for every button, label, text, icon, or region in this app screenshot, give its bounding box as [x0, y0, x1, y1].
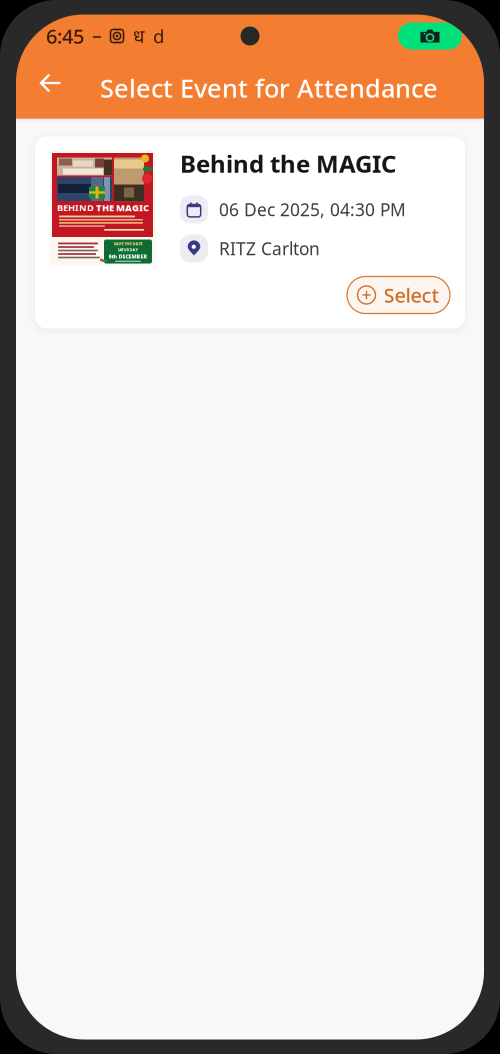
staticText: 6th DECEMBER — [108, 253, 147, 260]
staticText: d — [153, 24, 164, 48]
staticText: Select Event for Attendance — [100, 71, 438, 105]
staticText: 06 Dec 2025, 04:30 PM — [219, 198, 406, 221]
staticText: THE MAGIC — [96, 201, 149, 214]
staticText: SATURDAY — [117, 247, 138, 252]
staticText: Select — [383, 282, 439, 308]
button[interactable]: Back — [27, 62, 73, 114]
staticText: ध — [133, 24, 144, 48]
staticText: 6:45 — [46, 23, 84, 49]
button[interactable]: Select — [347, 276, 450, 313]
staticText: SAVE THE DATE — [113, 241, 142, 246]
staticText: RITZ Carlton — [219, 237, 320, 260]
staticText: BEHIND — [57, 201, 94, 214]
button[interactable]: Camera in use — [398, 22, 462, 49]
staticText: Behind the MAGIC — [180, 148, 396, 179]
